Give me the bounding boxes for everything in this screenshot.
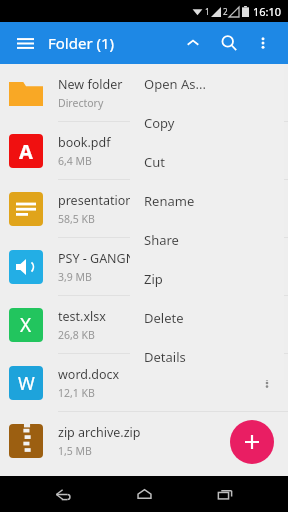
- staticText: presentation.ppt: [58, 192, 157, 209]
- button[interactable]: Home: [126, 476, 162, 512]
- staticText: word.docx: [58, 366, 120, 383]
- staticText: 6,4 MB: [58, 154, 92, 168]
- staticText: 1: [205, 6, 210, 17]
- button[interactable]: Zip: [130, 259, 284, 298]
- button[interactable]: Copy: [130, 103, 284, 142]
- button[interactable]: Search: [214, 28, 244, 58]
- button[interactable]: Menu: [10, 28, 40, 58]
- button[interactable]: Details: [130, 337, 284, 376]
- button[interactable]: presentation.ppt: [0, 180, 288, 237]
- button[interactable]: PSY - GANGNAM: [0, 238, 288, 295]
- staticText: Open As...: [144, 75, 206, 93]
- button[interactable]: Back: [45, 476, 81, 512]
- button[interactable]: Add: [230, 420, 274, 464]
- staticText: 3,9 MB: [58, 270, 92, 284]
- staticText: Details: [144, 348, 186, 366]
- staticText: 16:10: [253, 4, 282, 19]
- staticText: 58,5 KB: [58, 212, 95, 226]
- staticText: X: [20, 312, 32, 338]
- staticText: PSY - GANGNAM: [58, 250, 155, 267]
- staticText: 2: [223, 6, 228, 17]
- staticText: New folder: [58, 76, 123, 93]
- staticText: Zip: [144, 270, 163, 288]
- staticText: A: [19, 138, 33, 165]
- staticText: Folder (1): [48, 33, 115, 53]
- staticText: 1,5 MB: [58, 444, 92, 458]
- staticText: Delete: [144, 309, 184, 327]
- button[interactable]: New folder: [0, 64, 288, 121]
- button[interactable]: Recents: [207, 476, 243, 512]
- button[interactable]: Share: [130, 220, 284, 259]
- staticText: 12,1 KB: [58, 386, 95, 400]
- staticText: Rename: [144, 192, 195, 210]
- button[interactable]: Open As...: [130, 64, 284, 103]
- staticText: Cut: [144, 153, 165, 171]
- staticText: Share: [144, 231, 179, 249]
- button[interactable]: A: [0, 122, 288, 179]
- staticText: test.xlsx: [58, 308, 106, 325]
- button[interactable]: Cut: [130, 142, 284, 181]
- button[interactable]: zip archive.zip: [0, 412, 288, 469]
- button[interactable]: Delete: [130, 298, 284, 337]
- staticText: zip archive.zip: [58, 424, 141, 441]
- staticText: Directory: [58, 96, 104, 110]
- button[interactable]: Item options: [254, 370, 280, 396]
- staticText: W: [18, 371, 35, 396]
- button[interactable]: Rename: [130, 181, 284, 220]
- button[interactable]: More options: [248, 28, 278, 58]
- staticText: 26,8 KB: [58, 328, 95, 342]
- button[interactable]: W: [0, 354, 288, 411]
- staticText: book.pdf: [58, 134, 111, 151]
- button[interactable]: X: [0, 296, 288, 353]
- staticText: Copy: [144, 114, 175, 132]
- button[interactable]: Collapse: [178, 28, 208, 58]
